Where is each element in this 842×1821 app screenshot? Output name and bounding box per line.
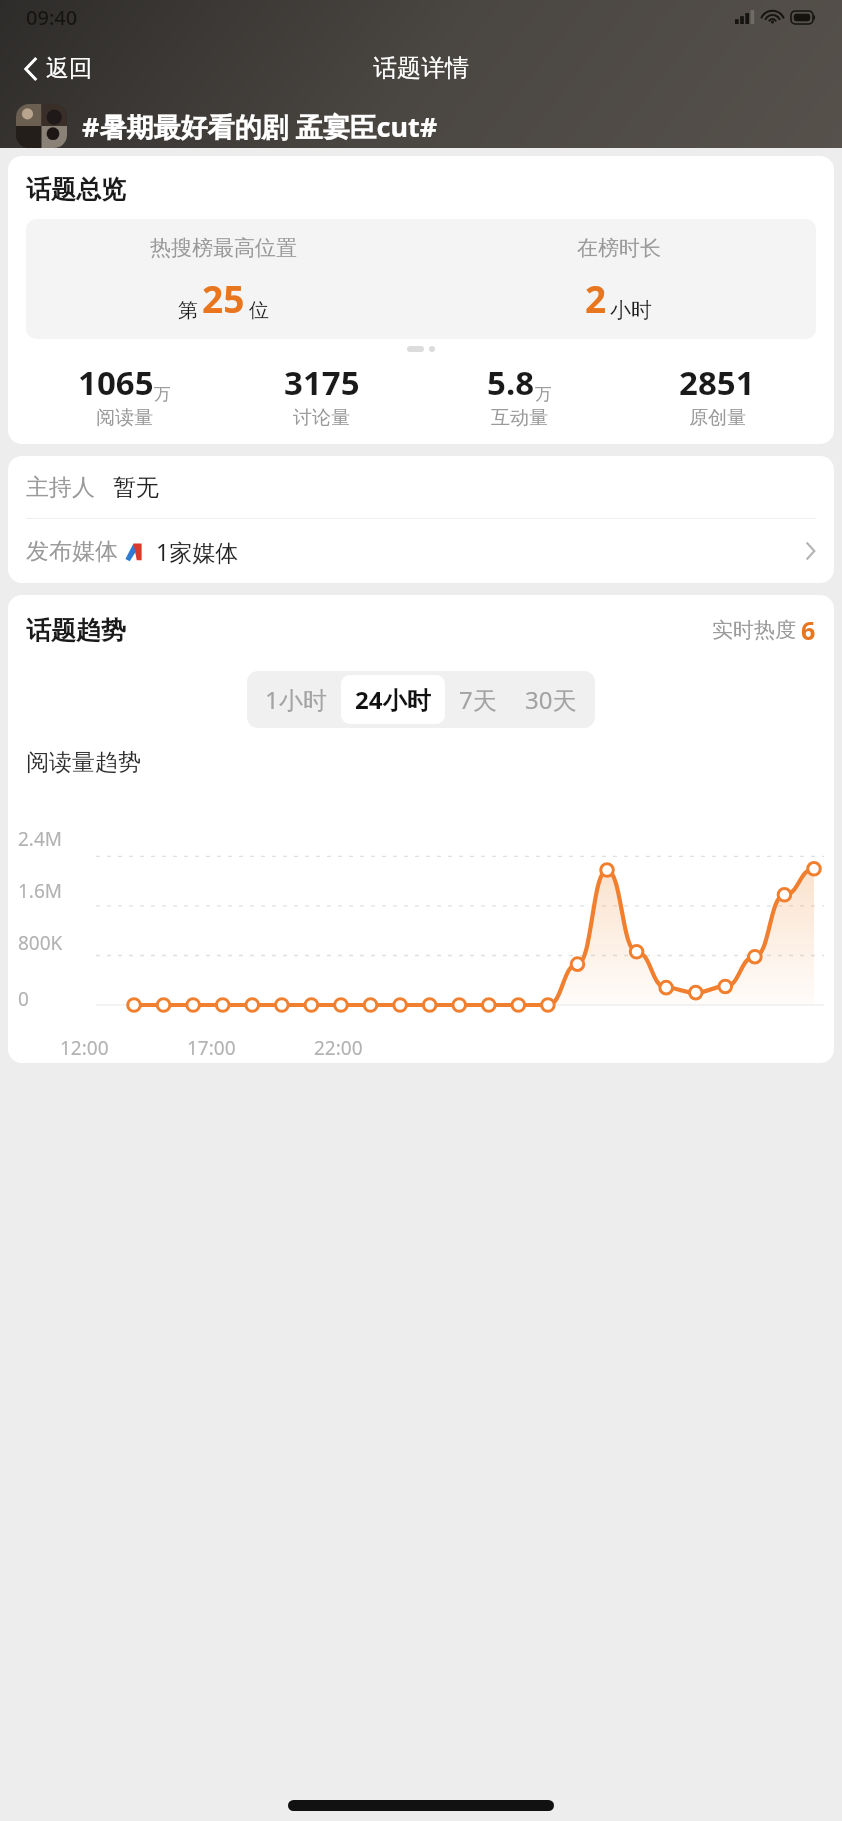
staticText: 1小时 bbox=[265, 683, 327, 716]
staticText: 17:00 bbox=[187, 1035, 236, 1061]
button[interactable]: 主持人 bbox=[8, 456, 834, 518]
staticText: 小时 bbox=[610, 297, 652, 323]
staticText: 2.4M bbox=[18, 826, 63, 852]
button[interactable]: 24小时 bbox=[341, 675, 445, 724]
button[interactable]: 30天 bbox=[511, 675, 591, 724]
staticText: 实时热度 bbox=[712, 617, 796, 643]
staticText: 24小时 bbox=[355, 683, 431, 716]
staticText: 话题详情 bbox=[373, 53, 469, 83]
staticText: 原创量 bbox=[689, 406, 746, 430]
staticText: 6 bbox=[801, 613, 816, 647]
staticText: 22:00 bbox=[314, 1035, 363, 1061]
staticText: 25 bbox=[202, 273, 245, 323]
staticText: 09:40 bbox=[26, 4, 78, 31]
button[interactable] bbox=[16, 104, 67, 148]
staticText: 2 bbox=[585, 273, 607, 323]
staticText: 万 bbox=[154, 384, 171, 405]
button[interactable]: 发布媒体 bbox=[8, 519, 834, 583]
staticText: 热搜榜最高位置 bbox=[150, 235, 297, 261]
button[interactable]: 7天 bbox=[445, 675, 511, 724]
staticText: 暂无 bbox=[113, 473, 159, 502]
staticText: 7天 bbox=[459, 683, 497, 716]
staticText: 发布媒体 bbox=[26, 537, 118, 566]
staticText: 1065 bbox=[78, 360, 154, 405]
staticText: 2851 bbox=[679, 360, 755, 405]
staticText: 阅读量 bbox=[96, 406, 153, 430]
staticText: 互动量 bbox=[491, 406, 548, 430]
staticText: 1.6M bbox=[18, 878, 63, 904]
staticText: 阅读量趋势 bbox=[26, 748, 141, 777]
staticText: 12:00 bbox=[60, 1035, 109, 1061]
button[interactable]: 返回 bbox=[16, 48, 100, 89]
staticText: 0 bbox=[18, 986, 29, 1012]
staticText: 主持人 bbox=[26, 473, 95, 502]
staticText: 万 bbox=[535, 384, 552, 405]
staticText: 30天 bbox=[525, 683, 577, 716]
staticText: 位 bbox=[249, 298, 269, 323]
staticText: 话题总览 bbox=[26, 174, 126, 205]
staticText: 返回 bbox=[46, 54, 92, 83]
staticText: 讨论量 bbox=[293, 406, 350, 430]
staticText: 800K bbox=[18, 930, 63, 956]
staticText: 话题趋势 bbox=[26, 615, 126, 646]
staticText: 1家媒体 bbox=[156, 536, 239, 567]
button[interactable]: 1小时 bbox=[251, 675, 341, 724]
staticText: 在榜时长 bbox=[577, 235, 661, 261]
staticText: 3175 bbox=[284, 360, 360, 405]
staticText: 5.8 bbox=[487, 360, 535, 405]
staticText: #暑期最好看的剧 孟宴臣cut# bbox=[82, 108, 438, 145]
staticText: 第 bbox=[178, 298, 198, 323]
